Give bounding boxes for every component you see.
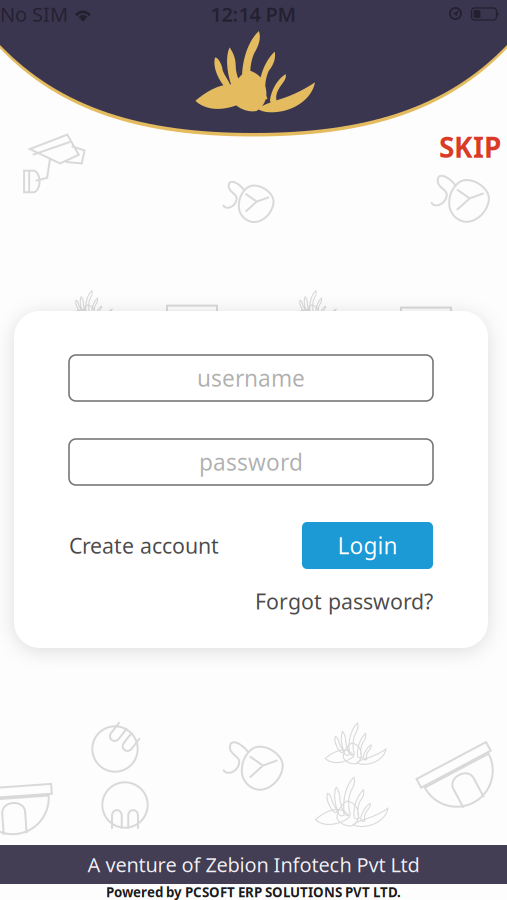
staticText: A venture of Zebion Infotech Pvt Ltd — [87, 851, 419, 878]
button[interactable]: Create account — [69, 523, 219, 568]
staticText: 12:14 PM — [210, 1, 296, 27]
staticText: No SIM — [0, 1, 68, 27]
staticText: SKIP — [439, 128, 501, 166]
staticText: Forgot password? — [255, 587, 433, 615]
staticText: password — [199, 447, 303, 477]
button[interactable]: SKIP — [436, 131, 504, 163]
staticText: Powered by PCSOFT ERP SOLUTIONS PVT LTD. — [106, 883, 401, 900]
button[interactable]: Forgot password? — [255, 581, 433, 621]
staticText: Login — [337, 530, 397, 560]
button[interactable]: Login — [302, 522, 433, 569]
staticText: username — [197, 363, 305, 393]
staticText: Create account — [69, 531, 219, 560]
